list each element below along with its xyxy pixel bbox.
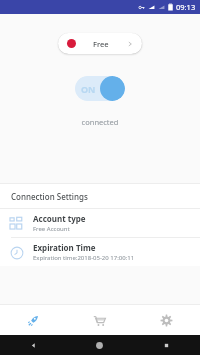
button[interactable]: Settings <box>133 305 200 335</box>
staticText: 09:13 <box>176 2 196 12</box>
staticText: Account type <box>33 213 86 224</box>
button[interactable]: Expiration Time <box>0 238 200 266</box>
staticText: ON <box>81 83 96 95</box>
button[interactable]: Free <box>58 33 142 54</box>
staticText: Expiration Time <box>33 242 96 253</box>
staticText: Expiration time:2018-05-20 17:00:11 <box>33 254 135 262</box>
staticText: connected <box>0 117 200 127</box>
staticText: Connection Settings <box>11 191 88 202</box>
button[interactable]: Connect <box>0 305 66 335</box>
button[interactable]: Connection toggle, on <box>75 76 125 101</box>
button[interactable]: Store <box>66 305 133 335</box>
button[interactable]: Account type <box>0 209 200 237</box>
staticText: Free Account <box>33 225 70 233</box>
staticText: Free <box>93 39 109 49</box>
